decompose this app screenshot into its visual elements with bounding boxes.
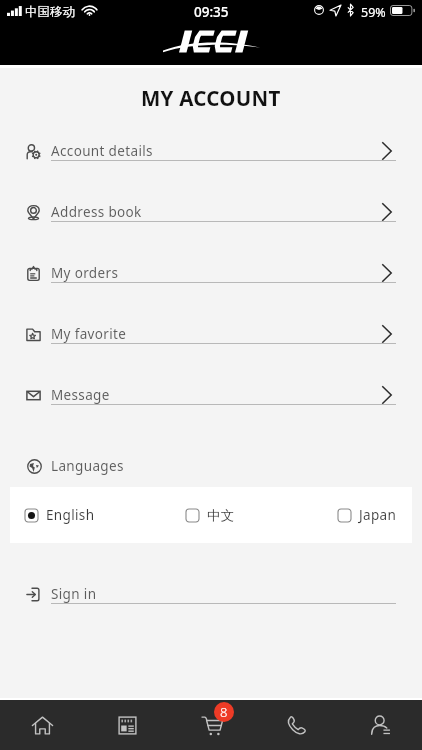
staticText: 中文: [207, 507, 235, 524]
staticText: Sign in: [51, 585, 97, 603]
button[interactable]: Call: [254, 700, 338, 750]
button[interactable]: Message: [0, 364, 422, 425]
staticText: 59%: [361, 4, 386, 21]
button[interactable]: Account details: [0, 120, 422, 181]
staticText: MY ACCOUNT: [141, 84, 281, 110]
button[interactable]: My orders: [0, 242, 422, 303]
staticText: Message: [51, 386, 110, 404]
staticText: 8: [220, 703, 228, 721]
button[interactable]: Languages: [27, 455, 124, 477]
button[interactable]: Home: [0, 700, 85, 750]
button[interactable]: Account: [338, 700, 422, 750]
staticText: Account details: [51, 142, 153, 160]
button[interactable]: News: [85, 700, 170, 750]
button[interactable]: My favorite: [0, 303, 422, 364]
button[interactable]: Address book: [0, 181, 422, 242]
staticText: Languages: [51, 457, 124, 475]
button[interactable]: Cart: [170, 700, 254, 750]
staticText: 中国移动: [25, 4, 75, 20]
staticText: Address book: [51, 203, 142, 221]
button[interactable]: Sign in: [0, 563, 422, 613]
button[interactable]: 中文: [186, 487, 235, 543]
button[interactable]: English: [25, 487, 95, 543]
staticText: My orders: [51, 264, 119, 282]
staticText: 09:35: [194, 3, 229, 21]
button[interactable]: Japan: [338, 487, 397, 543]
staticText: My favorite: [51, 325, 127, 343]
staticText: English: [46, 506, 95, 524]
staticText: Japan: [359, 506, 397, 524]
